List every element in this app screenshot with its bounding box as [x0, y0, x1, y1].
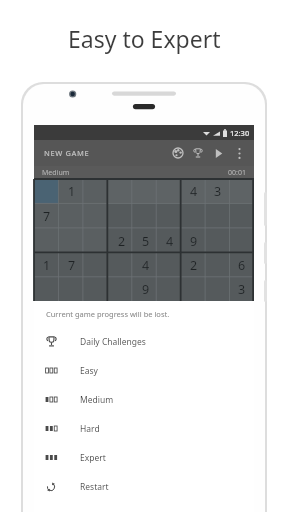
button[interactable]: 4	[134, 253, 158, 277]
button[interactable]	[34, 277, 59, 301]
button[interactable]: Easy	[34, 356, 254, 385]
staticText: Hard	[80, 423, 100, 435]
button[interactable]	[34, 229, 59, 253]
staticText: 4	[142, 257, 150, 274]
button[interactable]: More options	[228, 142, 250, 164]
button[interactable]: Theme	[168, 143, 188, 163]
button[interactable]	[230, 179, 254, 204]
staticText: 4	[190, 183, 198, 200]
staticText: 1	[68, 183, 76, 200]
button[interactable]	[109, 179, 134, 204]
staticText: 6	[238, 257, 246, 274]
button[interactable]: 5	[134, 229, 158, 253]
staticText: 3	[214, 183, 222, 200]
button[interactable]	[134, 204, 158, 229]
button[interactable]	[158, 204, 182, 229]
button[interactable]: NEW GAME	[44, 148, 90, 158]
button[interactable]: Hard	[34, 414, 254, 443]
button[interactable]	[206, 277, 230, 301]
staticText: Medium	[42, 168, 70, 178]
button[interactable]	[182, 204, 206, 229]
staticText: 2	[118, 233, 126, 250]
button[interactable]	[84, 204, 109, 229]
button[interactable]	[134, 179, 158, 204]
staticText: Easy	[80, 365, 98, 377]
button[interactable]: 1	[34, 253, 59, 277]
button[interactable]	[84, 277, 109, 301]
staticText: 9	[142, 281, 150, 298]
button[interactable]: 2	[109, 229, 134, 253]
button[interactable]	[230, 229, 254, 253]
button[interactable]	[206, 229, 230, 253]
button[interactable]	[109, 253, 134, 277]
staticText: 7	[43, 208, 51, 225]
button[interactable]: 9	[134, 277, 158, 301]
staticText: 9	[190, 233, 198, 250]
button[interactable]: 7	[59, 253, 84, 277]
button[interactable]	[158, 277, 182, 301]
button[interactable]: Daily Challenges	[34, 327, 254, 356]
button[interactable]	[206, 204, 230, 229]
staticText: Restart	[80, 481, 109, 493]
staticText: Daily Challenges	[80, 336, 146, 348]
staticText: 00:01	[228, 168, 246, 178]
button[interactable]: Medium	[34, 385, 254, 414]
button[interactable]	[34, 179, 59, 204]
button[interactable]	[59, 204, 84, 229]
staticText: 2	[190, 257, 198, 274]
button[interactable]: 3	[206, 179, 230, 204]
button[interactable]	[84, 253, 109, 277]
button[interactable]: 4	[158, 229, 182, 253]
button[interactable]	[230, 204, 254, 229]
staticText: 3	[238, 281, 246, 298]
button[interactable]: 1	[59, 179, 84, 204]
button[interactable]	[109, 277, 134, 301]
staticText: Medium	[80, 394, 114, 406]
button[interactable]: 6	[230, 253, 254, 277]
staticText: 5	[142, 233, 150, 250]
button[interactable]: 9	[182, 229, 206, 253]
button[interactable]	[59, 229, 84, 253]
staticText: NEW GAME	[44, 148, 90, 158]
staticText: 4	[166, 233, 174, 250]
button[interactable]	[84, 229, 109, 253]
button[interactable]	[84, 179, 109, 204]
staticText: 12:30	[230, 128, 250, 138]
staticText: 1	[43, 257, 51, 274]
button[interactable]	[158, 179, 182, 204]
button[interactable]: 3	[230, 277, 254, 301]
button[interactable]	[206, 253, 230, 277]
button[interactable]	[109, 204, 134, 229]
staticText: Expert	[80, 452, 106, 464]
button[interactable]: Restart	[34, 472, 254, 501]
button[interactable]: Expert	[34, 443, 254, 472]
staticText: Current game progress will be lost.	[46, 309, 170, 319]
button[interactable]: 4	[182, 179, 206, 204]
staticText: Easy to Expert	[68, 23, 221, 54]
button[interactable]: Play	[208, 143, 228, 163]
button[interactable]: Leaderboards	[188, 143, 208, 163]
staticText: 7	[68, 257, 76, 274]
button[interactable]	[158, 253, 182, 277]
button[interactable]: 2	[182, 253, 206, 277]
button[interactable]: 7	[34, 204, 59, 229]
